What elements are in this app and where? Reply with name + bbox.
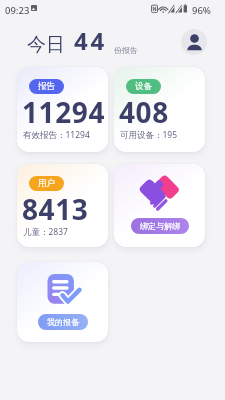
staticText: 408	[119, 93, 169, 131]
button[interactable]: Profile	[181, 29, 207, 55]
button[interactable]: 用户	[17, 164, 108, 247]
staticText: 报告	[38, 81, 55, 92]
staticText: 今日	[27, 33, 65, 57]
staticText: 09:23	[5, 4, 30, 17]
button[interactable]: 设备	[114, 67, 205, 152]
staticText: 用户	[38, 178, 55, 189]
staticText: 份报告	[114, 45, 138, 55]
staticText: 有效报告：11294	[23, 129, 90, 141]
staticText: 绑定与解绑	[140, 221, 180, 231]
staticText: 8413	[22, 190, 89, 228]
staticText: 可用设备：195	[120, 129, 178, 141]
staticText: 11294	[22, 93, 106, 131]
button[interactable]: 我的报备	[17, 262, 108, 342]
button[interactable]: 报告	[17, 67, 108, 152]
staticText: 96%	[192, 4, 211, 17]
staticText: 儿童：2837	[23, 226, 68, 238]
staticText: 我的报备	[47, 317, 79, 327]
staticText: 44	[74, 24, 108, 57]
button[interactable]: 绑定与解绑	[114, 164, 205, 247]
staticText: 设备	[135, 81, 152, 92]
